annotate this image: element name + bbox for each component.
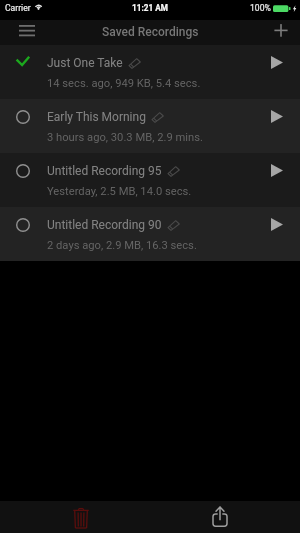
staticText: Yesterday, 2.5 MB, 14.0 secs. xyxy=(47,185,192,198)
staticText: Untitled Recording 95 xyxy=(47,164,162,178)
button[interactable]: Play xyxy=(258,102,296,130)
staticText: 11:21 AM xyxy=(132,3,168,13)
button[interactable]: Delete xyxy=(61,504,101,530)
button[interactable]: Share xyxy=(200,502,240,528)
button[interactable]: Menu xyxy=(0,20,44,45)
staticText: Carrier xyxy=(5,3,31,13)
staticText: 2 days ago, 2.9 MB, 16.3 secs. xyxy=(47,239,197,252)
button[interactable]: Untitled Recording 95 xyxy=(0,153,300,207)
button[interactable]: Untitled Recording 90 xyxy=(0,207,300,261)
staticText: 100% xyxy=(250,3,271,13)
button[interactable]: Play xyxy=(258,210,296,238)
staticText: 3 hours ago, 30.3 MB, 2.9 mins. xyxy=(47,131,203,144)
staticText: Saved Recordings xyxy=(102,25,199,39)
button[interactable]: Early This Morning xyxy=(0,99,300,153)
button[interactable]: Play xyxy=(258,156,296,184)
staticText: Just One Take xyxy=(47,56,123,70)
button[interactable]: Just One Take xyxy=(0,45,300,99)
staticText: Early This Morning xyxy=(47,110,146,124)
button[interactable]: Play xyxy=(258,48,296,76)
staticText: Untitled Recording 90 xyxy=(47,218,162,232)
staticText: 14 secs. ago, 949 KB, 5.4 secs. xyxy=(47,77,201,90)
button[interactable]: Add recording xyxy=(260,20,300,45)
